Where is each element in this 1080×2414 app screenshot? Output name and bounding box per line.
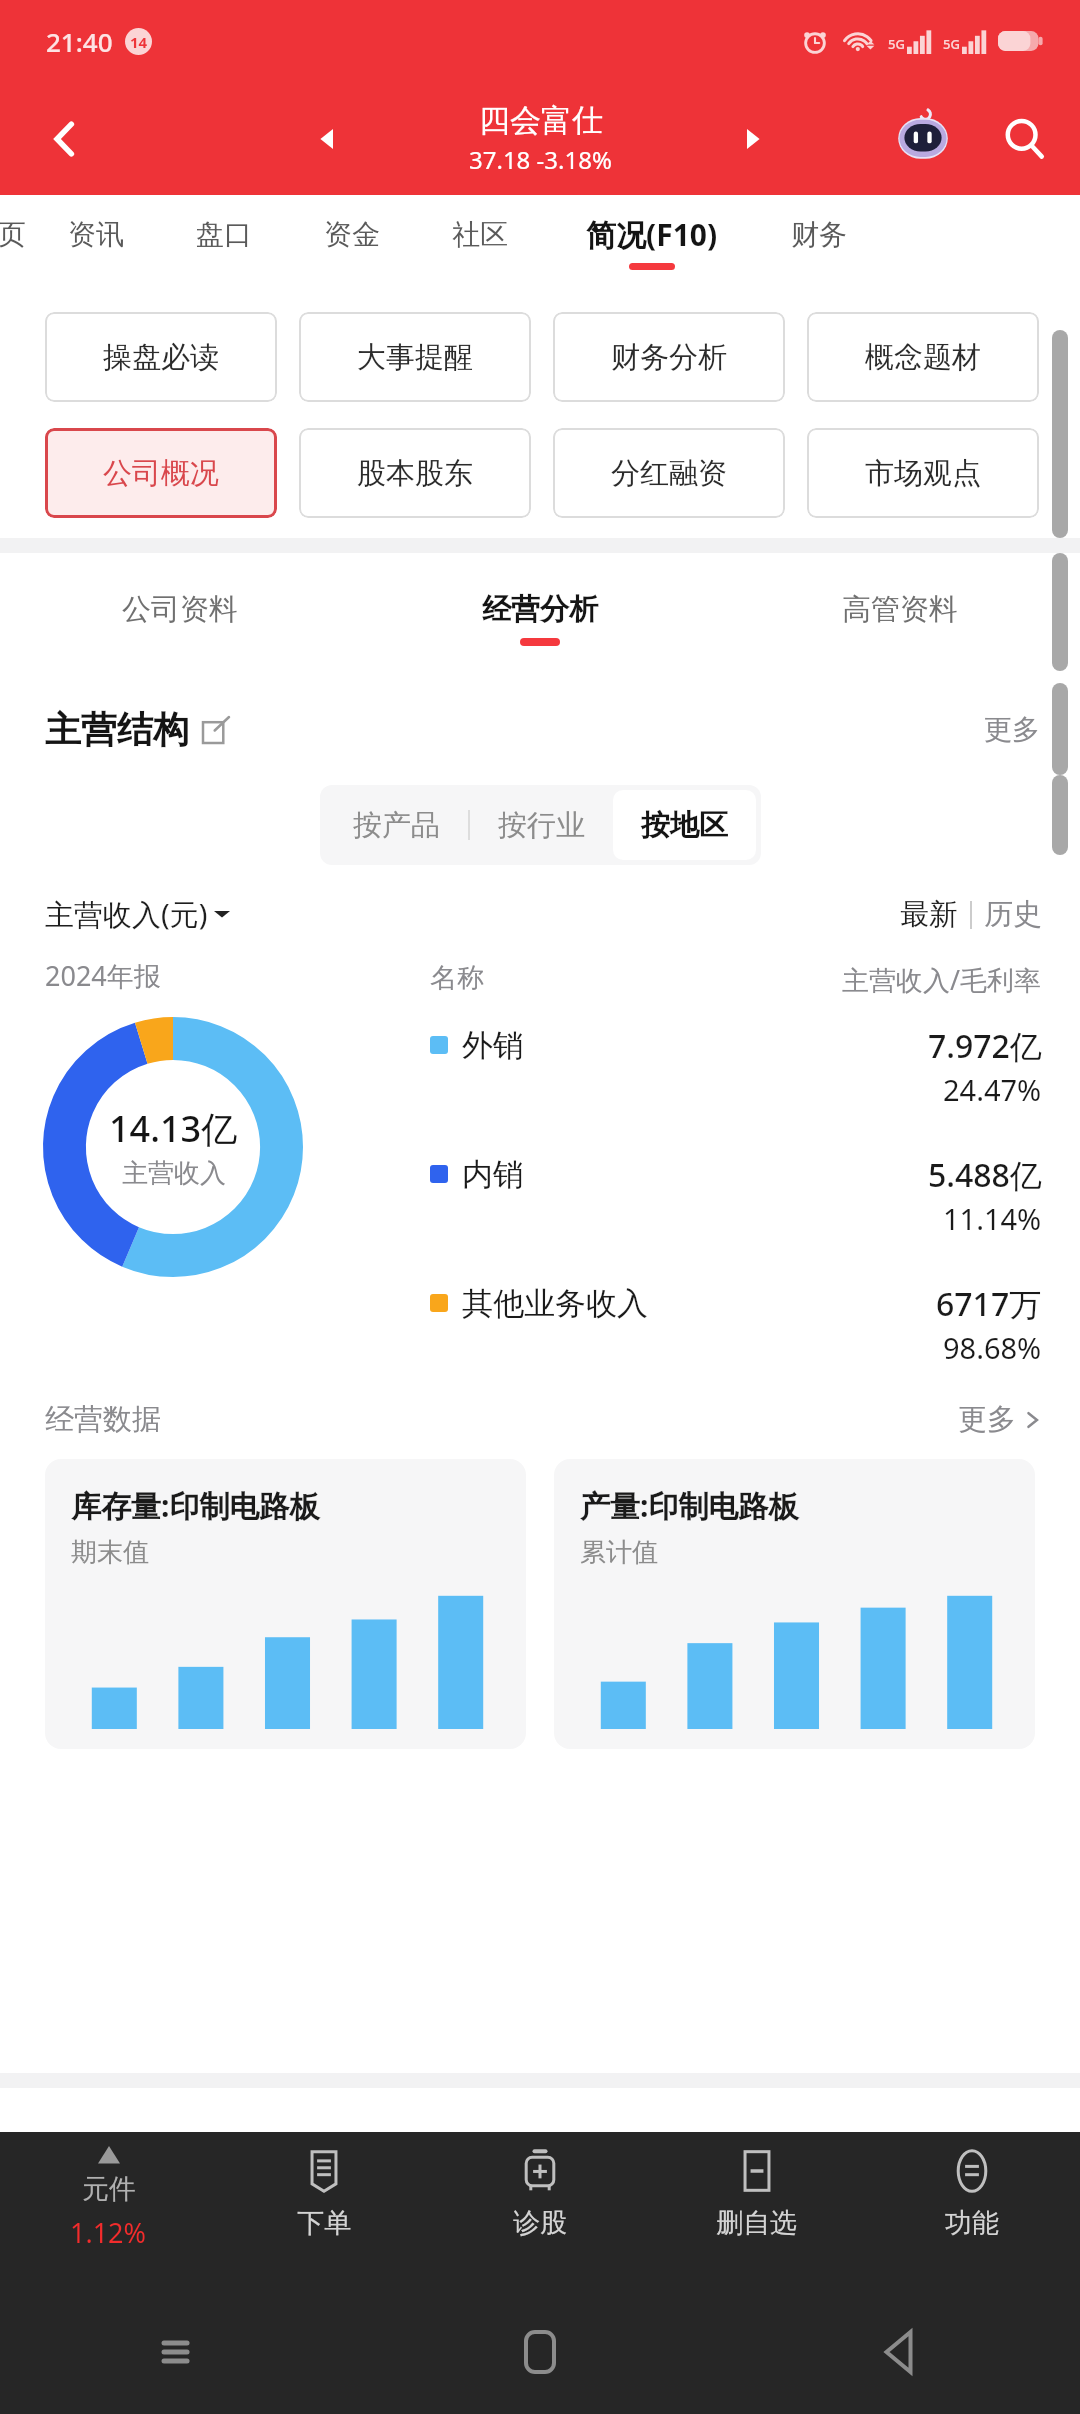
- staticText: 股本股东: [357, 455, 473, 492]
- button[interactable]: Open detail: [201, 715, 231, 745]
- staticText: 概念题材: [865, 339, 981, 376]
- staticText: 5.488亿: [928, 1153, 1042, 1197]
- button[interactable]: AI assistant: [884, 100, 962, 178]
- button[interactable]: 按产品: [325, 790, 468, 860]
- staticText: 11.14%: [943, 1199, 1042, 1238]
- button[interactable]: 资讯: [32, 195, 160, 288]
- staticText: 其他业务收入: [462, 1284, 648, 1323]
- button[interactable]: Previous stock: [298, 109, 358, 169]
- button[interactable]: 内销: [430, 1153, 1042, 1238]
- button[interactable]: 最新: [900, 896, 958, 933]
- staticText: 按地区: [641, 807, 728, 844]
- staticText: 删自选: [716, 2206, 797, 2240]
- button[interactable]: 简况(F10): [544, 195, 759, 288]
- staticText: 名称: [430, 961, 484, 995]
- staticText: 更多: [984, 712, 1040, 747]
- staticText: 外销: [462, 1026, 524, 1065]
- button[interactable]: 更多: [984, 712, 1040, 747]
- staticText: 累计值: [580, 1536, 658, 1569]
- staticText: 市场观点: [865, 455, 981, 492]
- button[interactable]: Home: [360, 2290, 720, 2414]
- staticText: 下单: [297, 2206, 351, 2240]
- staticText: 2024年报: [45, 957, 161, 994]
- button[interactable]: 主营收入(元): [45, 894, 230, 934]
- button[interactable]: Back: [720, 2290, 1080, 2414]
- staticText: 高管资料: [842, 591, 958, 628]
- button[interactable]: 按行业: [470, 790, 613, 860]
- staticText: 主营结构: [45, 707, 189, 752]
- button[interactable]: 元件: [0, 2132, 216, 2290]
- staticText: 大事提醒: [357, 339, 473, 376]
- staticText: 5G: [943, 35, 960, 53]
- staticText: 经营数据: [45, 1401, 161, 1438]
- staticText: 按行业: [498, 807, 585, 844]
- button[interactable]: 公司概况: [45, 428, 277, 518]
- button[interactable]: 盘口: [160, 195, 288, 288]
- staticText: 四会富仕: [479, 101, 603, 140]
- staticText: 资金: [324, 217, 380, 252]
- staticText: 21:40: [46, 24, 113, 59]
- staticText: 财务分析: [611, 339, 727, 376]
- button[interactable]: 页: [0, 195, 32, 288]
- staticText: 盘口: [196, 217, 252, 252]
- staticText: 简况(F10): [586, 214, 718, 255]
- button[interactable]: 库存量:印制电路板: [45, 1459, 526, 1749]
- button[interactable]: 资金: [288, 195, 416, 288]
- button[interactable]: Next stock: [722, 109, 782, 169]
- staticText: 社区: [452, 217, 508, 252]
- button[interactable]: 分红融资: [553, 428, 785, 518]
- staticText: 期末值: [71, 1536, 149, 1569]
- button[interactable]: 经营分析: [360, 553, 720, 683]
- staticText: 分红融资: [611, 455, 727, 492]
- staticText: 37.18 -3.18%: [469, 143, 612, 176]
- staticText: 财务: [791, 217, 847, 252]
- button[interactable]: 其他业务收入: [430, 1282, 1042, 1367]
- staticText: 历史: [984, 896, 1042, 933]
- button[interactable]: 功能: [864, 2132, 1080, 2290]
- staticText: 内销: [462, 1155, 524, 1194]
- staticText: 公司资料: [122, 591, 238, 628]
- button[interactable]: 更多: [958, 1401, 1042, 1438]
- staticText: 功能: [945, 2206, 999, 2240]
- button[interactable]: 股本股东: [299, 428, 531, 518]
- button[interactable]: 高管资料: [720, 553, 1080, 683]
- staticText: 最新: [900, 896, 958, 933]
- button[interactable]: 市场观点: [807, 428, 1039, 518]
- staticText: 6717万: [936, 1282, 1042, 1326]
- staticText: 14.13亿: [109, 1104, 238, 1153]
- button[interactable]: Back: [0, 82, 130, 195]
- staticText: 库存量:印制电路板: [71, 1485, 320, 1526]
- button[interactable]: Search: [970, 82, 1080, 195]
- staticText: 主营收入/毛利率: [842, 961, 1042, 998]
- staticText: 经营分析: [482, 591, 598, 628]
- button[interactable]: 外销: [430, 1024, 1042, 1109]
- staticText: 7.972亿: [928, 1024, 1042, 1068]
- staticText: 资讯: [68, 217, 124, 252]
- staticText: 主营收入(元): [45, 894, 208, 934]
- staticText: 主营收入: [122, 1157, 226, 1190]
- staticText: 5G: [888, 35, 905, 53]
- button[interactable]: 产量:印制电路板: [554, 1459, 1035, 1749]
- button[interactable]: 诊股: [432, 2132, 648, 2290]
- button[interactable]: 公司资料: [0, 553, 360, 683]
- button[interactable]: 概念题材: [807, 312, 1039, 402]
- button[interactable]: 操盘必读: [45, 312, 277, 402]
- staticText: 按产品: [353, 807, 440, 844]
- staticText: 页: [0, 217, 26, 252]
- button[interactable]: 大事提醒: [299, 312, 531, 402]
- staticText: 操盘必读: [103, 339, 219, 376]
- button[interactable]: 删自选: [648, 2132, 864, 2290]
- staticText: 14: [130, 32, 148, 52]
- button[interactable]: 财务分析: [553, 312, 785, 402]
- staticText: 98.68%: [943, 1328, 1042, 1367]
- staticText: 诊股: [513, 2206, 567, 2240]
- button[interactable]: 社区: [416, 195, 544, 288]
- staticText: 公司概况: [103, 455, 219, 492]
- button[interactable]: 财务: [759, 195, 879, 288]
- button[interactable]: 下单: [216, 2132, 432, 2290]
- button[interactable]: 历史: [984, 896, 1042, 933]
- button[interactable]: Recents: [0, 2290, 360, 2414]
- staticText: 1.12%: [70, 2214, 147, 2251]
- staticText: 24.47%: [943, 1070, 1042, 1109]
- button[interactable]: 按地区: [613, 790, 756, 860]
